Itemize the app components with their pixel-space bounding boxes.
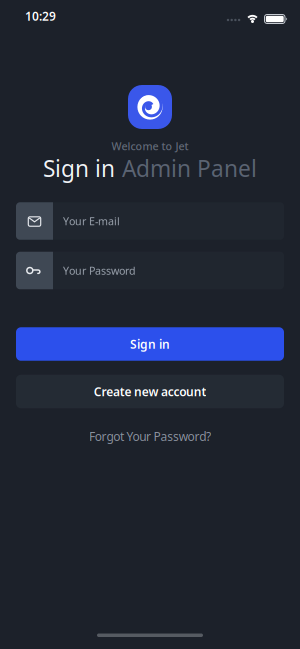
button[interactable]: Your Password xyxy=(16,252,284,289)
button[interactable]: Your E-mail xyxy=(16,202,284,240)
staticText: Admin Panel xyxy=(122,153,257,183)
staticText: Your Password xyxy=(63,263,136,278)
staticText: Create new account xyxy=(94,383,206,399)
staticText: Your E-mail xyxy=(63,214,120,228)
staticText: 10:29 xyxy=(25,8,56,24)
staticText: Sign in xyxy=(130,336,170,352)
staticText: Forgot Your Password? xyxy=(89,428,211,444)
button[interactable]: Create new account xyxy=(16,375,284,408)
staticText: Welcome to Jet xyxy=(111,139,188,153)
staticText: Sign in xyxy=(43,153,115,183)
button[interactable]: Forgot Your Password? xyxy=(89,428,211,444)
button[interactable]: Sign in xyxy=(16,327,284,361)
